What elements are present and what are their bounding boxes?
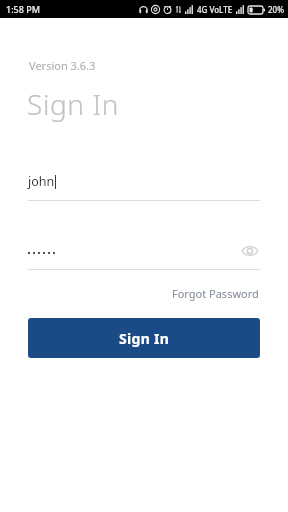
staticText: 20%: [268, 4, 284, 15]
staticText: Forgot Password: [172, 286, 259, 301]
button[interactable]: Forgot Password: [169, 283, 262, 304]
button[interactable]: Show password: [240, 241, 260, 261]
staticText: 1:58 PM: [6, 3, 40, 15]
staticText: 4G VoLTE: [197, 4, 233, 15]
staticText: Sign In: [27, 85, 120, 123]
staticText: Sign In: [119, 329, 170, 348]
staticText: Version 3.6.3: [29, 58, 96, 73]
button[interactable]: Sign In: [28, 318, 260, 358]
staticText: john: [28, 173, 55, 190]
button[interactable]: Show password: [28, 241, 260, 270]
button[interactable]: john: [28, 173, 260, 201]
